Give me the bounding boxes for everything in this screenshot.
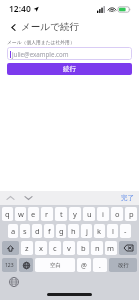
button[interactable]: 戻る <box>6 20 20 34</box>
button[interactable]: b <box>77 241 89 255</box>
button[interactable]: 続行 <box>7 63 132 75</box>
button[interactable]: m <box>105 241 117 255</box>
staticText: e <box>31 209 36 219</box>
button[interactable]: p <box>125 207 137 221</box>
staticText: 改行 <box>118 262 129 269</box>
button[interactable]: l <box>107 224 118 238</box>
button[interactable]: 完了 <box>121 194 134 202</box>
staticText: i <box>102 209 104 219</box>
button[interactable]: c <box>49 241 61 255</box>
button[interactable]: f <box>44 224 54 238</box>
staticText: h <box>71 226 76 236</box>
button[interactable]: 空白 <box>35 258 75 272</box>
staticText: 完了 <box>121 194 134 202</box>
staticText: u <box>87 209 92 219</box>
button[interactable]: - <box>120 224 131 238</box>
button[interactable]: j <box>81 224 92 238</box>
button[interactable]: 音声入力 <box>8 276 19 287</box>
button[interactable]: シフト <box>2 241 19 255</box>
button[interactable]: i <box>97 207 109 221</box>
staticText: 空白 <box>50 262 61 269</box>
staticText: m <box>107 243 115 253</box>
staticText: l <box>112 226 114 236</box>
staticText: y <box>73 209 77 219</box>
staticText: z <box>25 243 29 253</box>
button[interactable]: q <box>2 207 13 221</box>
button[interactable]: k <box>94 224 105 238</box>
staticText: t <box>60 209 63 219</box>
staticText: f <box>48 226 51 236</box>
staticText: j <box>86 226 88 236</box>
button[interactable]: g <box>56 224 66 238</box>
button[interactable]: s <box>20 224 30 238</box>
staticText: s <box>23 226 27 236</box>
staticText: @ <box>81 261 87 270</box>
staticText: c <box>53 243 57 253</box>
button[interactable]: 改行 <box>109 258 137 272</box>
staticText: b <box>81 243 86 253</box>
staticText: k <box>97 226 102 236</box>
staticText: v <box>67 243 71 253</box>
button[interactable]: x <box>35 241 47 255</box>
staticText: julie@example.com <box>12 50 69 58</box>
staticText: 123 <box>5 262 14 269</box>
button[interactable]: 次へ <box>23 193 33 203</box>
staticText: o <box>115 209 120 219</box>
button[interactable]: a <box>8 224 18 238</box>
staticText: n <box>95 243 100 253</box>
button[interactable]: v <box>63 241 75 255</box>
button[interactable]: r <box>41 207 53 221</box>
staticText: . <box>99 261 101 270</box>
button[interactable]: @ <box>77 258 91 272</box>
button[interactable]: 言語を切り替え <box>19 258 33 272</box>
button[interactable]: e <box>28 207 39 221</box>
button[interactable]: o <box>111 207 123 221</box>
button[interactable]: 前へ <box>5 193 15 203</box>
staticText: a <box>11 226 16 236</box>
staticText: p <box>129 209 134 219</box>
button[interactable]: julie@example.com <box>7 47 132 60</box>
staticText: 12:40 <box>9 3 31 15</box>
button[interactable]: z <box>21 241 33 255</box>
button[interactable]: y <box>69 207 81 221</box>
staticText: g <box>59 226 64 236</box>
staticText: r <box>45 209 49 219</box>
staticText: メール（個人用または社外用） <box>7 39 75 45</box>
button[interactable]: 削除 <box>119 241 137 255</box>
staticText: w <box>18 209 24 219</box>
button[interactable]: h <box>68 224 79 238</box>
button[interactable]: 123 <box>2 258 17 272</box>
staticText: q <box>5 209 10 219</box>
button[interactable]: . <box>93 258 107 272</box>
staticText: - <box>124 226 127 236</box>
button[interactable]: u <box>83 207 95 221</box>
staticText: d <box>35 226 40 236</box>
staticText: x <box>39 243 43 253</box>
staticText: 続行 <box>63 65 76 73</box>
button[interactable]: n <box>91 241 103 255</box>
button[interactable]: t <box>55 207 67 221</box>
button[interactable]: w <box>15 207 26 221</box>
button[interactable]: d <box>32 224 42 238</box>
staticText: メールで続行 <box>21 21 79 33</box>
